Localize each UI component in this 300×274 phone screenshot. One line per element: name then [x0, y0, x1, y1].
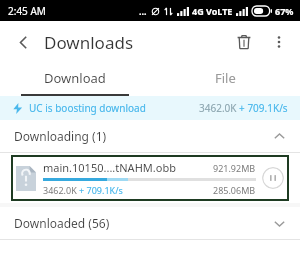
staticText: Downloading (1)	[14, 128, 107, 144]
staticText: 3462.0K + 709.1K/s	[43, 184, 123, 196]
button[interactable]: File	[150, 63, 300, 93]
button[interactable]: Back	[8, 27, 38, 57]
staticText: 2:45 AM	[8, 4, 46, 18]
staticText: main.10150....tNAHM.obb	[43, 160, 176, 175]
staticText: ...	[139, 5, 147, 17]
staticText: UC is boosting download	[29, 101, 146, 115]
button[interactable]: UC is boosting download	[0, 96, 300, 120]
button[interactable]: Pause download	[262, 167, 284, 189]
button[interactable]: More options	[264, 27, 294, 57]
staticText: 4G VoLTE	[192, 5, 233, 17]
staticText: Download	[44, 69, 106, 87]
staticText: 921.92MB	[213, 162, 256, 174]
staticText: Downloads	[44, 31, 134, 54]
staticText: 285.06MB	[213, 184, 256, 196]
staticText: File	[215, 69, 236, 87]
button[interactable]: Delete	[228, 26, 260, 58]
staticText: 3462.0K + 709.1K/s	[199, 101, 288, 115]
button[interactable]: Downloaded (56)	[0, 207, 300, 239]
button[interactable]: main.10150....tNAHM.obb	[11, 155, 289, 201]
button[interactable]: Download	[0, 63, 150, 93]
button[interactable]: Downloading (1)	[0, 120, 300, 152]
staticText: Downloaded (56)	[14, 215, 110, 231]
staticText: 67%	[275, 5, 294, 17]
